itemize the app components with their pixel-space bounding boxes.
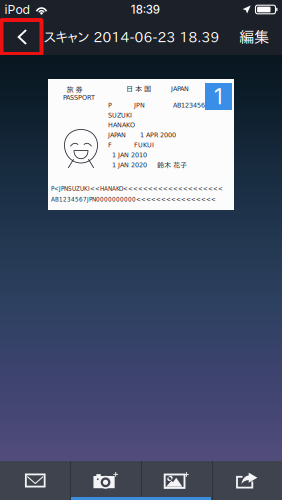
button[interactable]: Share: [211, 461, 282, 500]
staticText: AB1234567JPN0000000000<<<<<<<<<<<<<<<<: [51, 196, 216, 203]
staticText: 日 本 国: [126, 85, 151, 92]
staticText: 1 APR 2000: [140, 131, 176, 139]
staticText: 1: [214, 84, 223, 109]
staticText: FUKUI: [134, 141, 154, 149]
staticText: P<JPNSUZUKI<<HANAKO<<<<<<<<<<<<<<<<<<<<: [51, 185, 223, 192]
staticText: SUZUKI: [108, 111, 132, 119]
staticText: 編集: [239, 29, 269, 45]
staticText: 旅 券: [66, 86, 82, 93]
staticText: HANAKO: [108, 121, 135, 129]
staticText: P: [108, 101, 112, 109]
staticText: PASSPORT: [63, 94, 95, 101]
staticText: F: [108, 141, 112, 149]
button[interactable]: Mail: [0, 461, 70, 500]
button[interactable]: Add from library: [141, 461, 211, 500]
staticText: 鈴木 花子: [157, 161, 187, 168]
staticText: 18:39: [131, 3, 160, 16]
button[interactable]: Back: [1, 20, 41, 54]
button[interactable]: Take photo: [70, 461, 141, 500]
staticText: JAPAN: [108, 131, 126, 139]
staticText: JAPAN: [171, 85, 189, 92]
button[interactable]: 編集: [233, 20, 275, 53]
staticText: AB1234567: [173, 101, 209, 109]
staticText: JPN: [134, 101, 145, 109]
staticText: スキャン 2014-06-23 18.39: [43, 30, 219, 44]
staticText: 1 JAN 2010: [112, 151, 147, 159]
staticText: iPod: [4, 2, 30, 17]
staticText: 1 JAN 2020: [112, 161, 147, 169]
